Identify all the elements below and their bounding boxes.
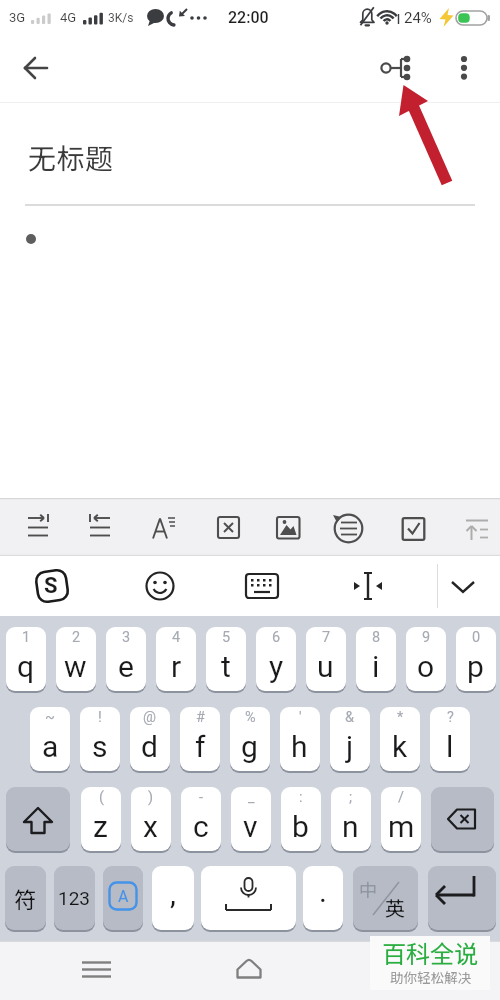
staticText: 助你轻松解决 [390,967,471,987]
button[interactable]: 7 [306,627,346,691]
staticText: & [345,709,355,726]
staticText: 8 [372,629,381,646]
staticText: y [269,649,284,684]
staticText: f [195,729,206,764]
staticText: b [292,809,310,844]
staticText: r [171,649,182,684]
button[interactable]: 中 [353,866,418,930]
button[interactable]: - [181,787,221,851]
button[interactable]: : [281,787,321,851]
button[interactable]: * [380,707,420,771]
staticText: i [372,649,380,684]
staticText: 4G [60,10,77,25]
button[interactable] [242,566,282,606]
button[interactable]: _ [231,787,271,851]
staticText: 无标题 [28,137,114,178]
staticText: e [118,649,135,684]
staticText: n [342,809,360,844]
staticText: 3G [9,10,26,25]
button[interactable]: ! [80,707,120,771]
staticText: p [467,649,485,684]
button[interactable]: / [381,787,421,851]
button[interactable]: ~ [30,707,70,771]
button[interactable]: % [230,707,270,771]
staticText: 123 [58,887,91,909]
button[interactable] [14,46,58,90]
staticText: w [64,649,88,684]
staticText: 中 [359,876,377,902]
staticText: 2 [72,629,81,646]
button[interactable]: . [303,866,343,930]
staticText: % [245,709,256,726]
button[interactable]: , [152,866,194,930]
staticText: 1 [22,629,31,646]
staticText: ? [447,709,454,726]
staticText: s [92,729,108,764]
staticText: S [44,573,58,599]
staticText: v [243,809,259,844]
button[interactable]: ? [430,707,470,771]
staticText: 22:00 [228,8,269,27]
button[interactable]: 5 [206,627,246,691]
button[interactable]: ( [81,787,121,851]
staticText: z [93,809,109,844]
staticText: 0 [472,629,481,646]
button[interactable]: 4 [156,627,196,691]
button[interactable] [348,566,388,606]
staticText: - [199,789,204,806]
staticText: @ [143,709,157,726]
button[interactable]: 3 [106,627,146,691]
staticText: ; [349,789,353,806]
button[interactable]: 百科全说 [370,936,490,990]
staticText: / [398,789,404,806]
button[interactable]: 6 [256,627,296,691]
button[interactable] [76,946,120,990]
staticText: 4 [172,629,181,646]
staticText: , [170,876,176,911]
staticText: _ [248,789,255,806]
staticText: t [221,649,232,684]
button[interactable]: ' [280,707,320,771]
button[interactable] [6,787,70,851]
button[interactable] [431,787,494,851]
staticText: 5 [222,629,231,646]
staticText: j [346,729,354,764]
staticText: d [141,729,159,764]
button[interactable]: 0 [456,627,496,691]
button[interactable] [227,946,271,990]
button[interactable]: A [103,866,143,930]
staticText: : [299,789,303,806]
button[interactable]: 8 [356,627,396,691]
button[interactable]: 9 [406,627,446,691]
staticText: 7 [322,629,331,646]
button[interactable]: # [180,707,220,771]
staticText: * [397,709,404,726]
button[interactable]: ; [331,787,371,851]
button[interactable] [376,46,420,90]
button[interactable]: 2 [56,627,96,691]
button[interactable]: 123 [54,866,95,930]
button[interactable] [428,866,496,930]
staticText: 符 [14,882,37,914]
button[interactable]: 1 [6,627,46,691]
button[interactable] [442,46,486,90]
button[interactable]: S [32,566,72,606]
staticText: 百科全说 [382,935,478,970]
staticText: c [193,809,210,844]
button[interactable] [140,566,180,606]
staticText: 3 [122,629,131,646]
staticText: a [42,729,59,764]
staticText: 3K/s [108,11,134,25]
button[interactable] [443,566,483,606]
staticText: ~ [45,709,55,726]
button[interactable]: 符 [5,866,46,930]
button[interactable]: @ [130,707,170,771]
staticText: 英 [385,893,405,922]
button[interactable] [201,866,296,930]
staticText: g [241,729,259,764]
staticText: 9 [422,629,431,646]
button[interactable]: & [330,707,370,771]
button[interactable]: ) [131,787,171,851]
staticText: l [446,729,454,764]
staticText: ' [299,709,302,726]
